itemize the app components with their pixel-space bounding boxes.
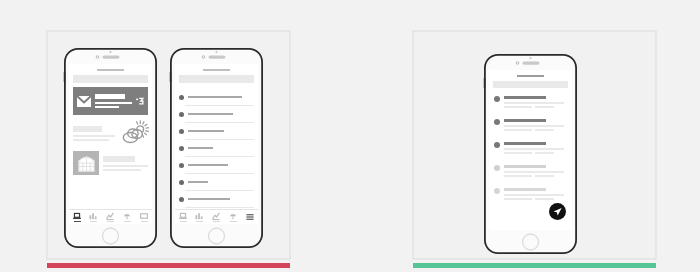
button[interactable]: Send message xyxy=(549,203,566,220)
button[interactable] xyxy=(179,191,254,207)
button[interactable] xyxy=(494,186,567,209)
button[interactable] xyxy=(179,106,254,122)
button[interactable] xyxy=(179,89,254,105)
button[interactable] xyxy=(179,140,254,156)
button[interactable]: Tab 4 xyxy=(224,210,241,224)
button[interactable]: Tab 5 xyxy=(135,210,152,224)
button[interactable] xyxy=(73,120,148,146)
button[interactable]: Tab 1 xyxy=(175,210,191,224)
button[interactable] xyxy=(73,150,148,176)
button[interactable] xyxy=(494,117,567,140)
button[interactable]: Tab 1 xyxy=(47,31,290,259)
button[interactable]: Tab 3 xyxy=(101,210,118,224)
button[interactable] xyxy=(494,140,567,163)
button[interactable] xyxy=(494,163,567,186)
button[interactable] xyxy=(179,157,254,173)
button[interactable]: Tab 3 xyxy=(207,210,224,224)
button[interactable]: Tab 2 xyxy=(191,210,207,224)
button[interactable] xyxy=(179,123,254,139)
button[interactable]: Tab 5 xyxy=(241,210,258,224)
button[interactable]: Tab 4 xyxy=(118,210,135,224)
button[interactable] xyxy=(73,87,148,115)
button[interactable]: Tab 2 xyxy=(85,210,101,224)
button[interactable]: Tab 1 xyxy=(69,210,85,224)
button[interactable]: Send message xyxy=(413,31,656,259)
button[interactable] xyxy=(494,94,567,117)
button[interactable] xyxy=(179,174,254,190)
